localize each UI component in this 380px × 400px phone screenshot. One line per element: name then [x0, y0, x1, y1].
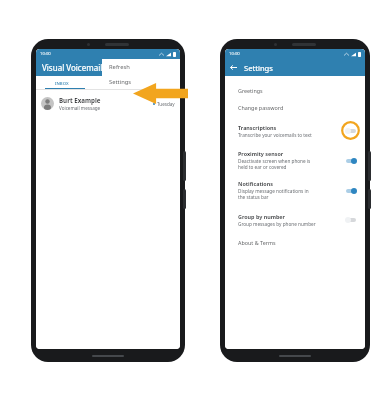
staticText: Notifications: [238, 180, 273, 187]
staticText: About & Terms: [238, 239, 276, 246]
staticText: Change password: [238, 104, 284, 111]
staticText: Deactivate screen when phone is held to …: [238, 158, 311, 170]
staticText: Settings: [109, 78, 132, 86]
button[interactable]: INBOX: [36, 76, 180, 89]
button[interactable]: Toggle: [345, 216, 357, 223]
button[interactable]: Settings: [102, 74, 180, 89]
staticText: Voicemail message: [59, 105, 101, 111]
button[interactable]: Toggle: [345, 187, 357, 194]
staticText: Greetings: [238, 87, 263, 94]
button[interactable]: Burt Example: [36, 90, 180, 117]
staticText: 10:00: [40, 51, 51, 57]
button[interactable]: Greetings: [225, 82, 365, 99]
staticText: Proximity sensor: [238, 150, 284, 157]
staticText: Transcriptions: [238, 124, 277, 131]
staticText: INBOX: [55, 80, 69, 86]
staticText: Transcribe your voicemails to text: [238, 132, 312, 138]
button[interactable]: Notifications: [225, 175, 365, 205]
button[interactable]: Toggle: [345, 157, 357, 164]
staticText: Group messages by phone number: [238, 221, 316, 227]
staticText: Display message notifications in the sta…: [238, 188, 309, 200]
staticText: Group by number: [238, 213, 285, 220]
button[interactable]: Refresh: [102, 59, 180, 74]
staticText: Settings: [244, 63, 273, 73]
staticText: Burt Example: [59, 96, 101, 104]
button[interactable]: Change password: [225, 99, 365, 116]
button[interactable]: About & Terms: [225, 234, 365, 251]
button[interactable]: Group by number: [225, 205, 365, 234]
button[interactable]: Back: [228, 62, 239, 73]
staticText: 10:00: [229, 51, 240, 57]
staticText: Refresh: [109, 63, 130, 71]
button[interactable]: Toggle: [345, 127, 357, 134]
staticText: Visual Voicemail: [42, 62, 103, 73]
staticText: Tuesday: [157, 101, 175, 107]
button[interactable]: Proximity sensor: [225, 145, 365, 175]
button[interactable]: Transcriptions: [225, 116, 365, 145]
